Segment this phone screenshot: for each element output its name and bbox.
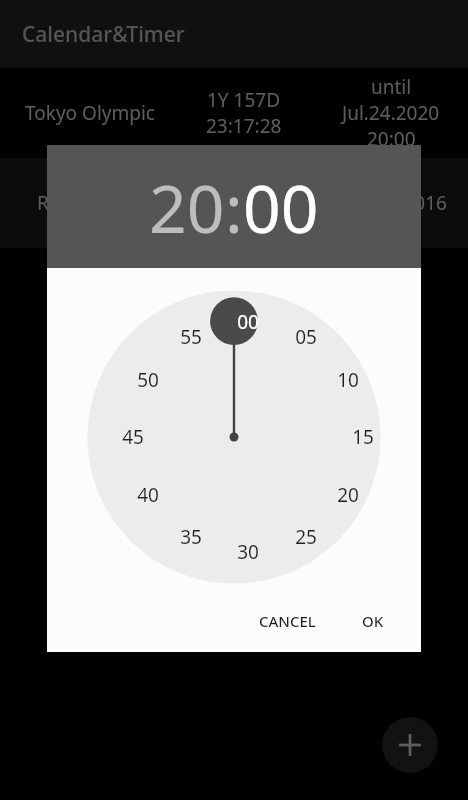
staticText: 23:17:28 [206, 113, 282, 139]
staticText: 00 [237, 309, 259, 335]
staticText: 15 [352, 424, 374, 450]
staticText: 55 [180, 324, 202, 350]
button[interactable]: OK [350, 603, 396, 639]
staticText: 05 [295, 324, 317, 350]
staticText: 45 [122, 424, 144, 450]
button[interactable]: CANCEL [247, 603, 328, 639]
staticText: CANCEL [259, 611, 316, 631]
staticText: Jul.24.2020 [342, 100, 440, 126]
staticText: 50 [137, 367, 159, 393]
staticText: OK [362, 611, 384, 631]
staticText: 10:02:11 [206, 203, 282, 229]
button[interactable]: 20 [149, 162, 225, 252]
staticText: 35 [180, 524, 202, 550]
staticText: 1Y 157D [207, 87, 281, 113]
staticText: 40 [137, 482, 159, 508]
staticText: 10 [337, 367, 359, 393]
button[interactable]: Calendar&Timer [0, 0, 468, 68]
staticText: 20 [337, 482, 359, 508]
button[interactable]: 00 [47, 268, 421, 590]
button[interactable]: Rio Olympic [0, 158, 468, 248]
staticText: until [371, 74, 412, 100]
staticText: Rio Olympic [6, 190, 174, 216]
staticText: : [225, 162, 243, 252]
staticText: 30 [237, 539, 259, 565]
button[interactable]: 00 [243, 162, 319, 252]
staticText: Tokyo Olympic [6, 100, 174, 126]
staticText: 2Y 21D [213, 177, 276, 203]
staticText: 20:00 [367, 126, 416, 152]
staticText: Calendar&Timer [22, 20, 185, 49]
staticText: 25 [295, 524, 317, 550]
button[interactable]: Add timer [382, 717, 438, 773]
button[interactable]: Tokyo Olympic [0, 68, 468, 158]
staticText: Aug.05.2016 [336, 190, 447, 216]
